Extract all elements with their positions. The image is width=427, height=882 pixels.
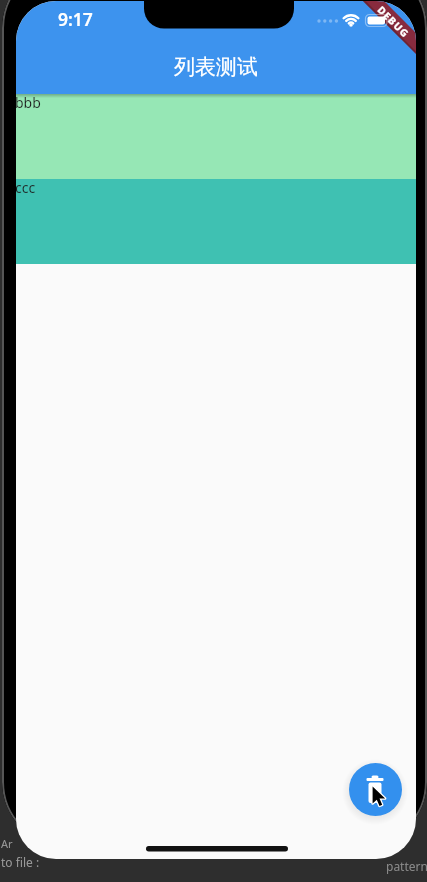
staticText: b — [417, 0, 425, 18]
button[interactable] — [349, 763, 402, 816]
staticText: DEBUG — [375, 3, 413, 41]
staticText: ccc — [16, 178, 36, 197]
staticText: 列表测试 — [16, 54, 416, 80]
staticText: Ar — [1, 836, 13, 851]
staticText: pattern — [386, 858, 427, 874]
button[interactable]: ccc — [16, 179, 416, 264]
staticText: to file : — [1, 854, 40, 870]
staticText: 9:17 — [58, 7, 93, 31]
button[interactable]: bbb — [16, 94, 416, 179]
staticText: bbb — [16, 93, 41, 112]
